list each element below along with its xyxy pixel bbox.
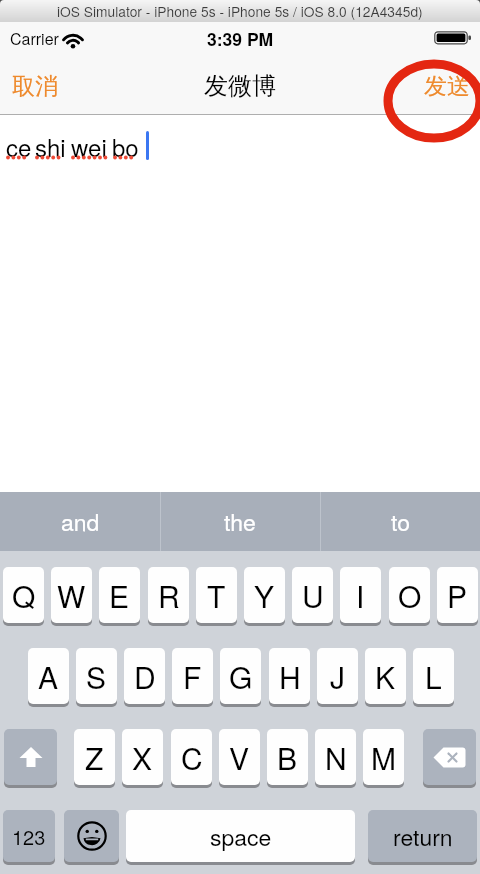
staticText: Q [12,574,36,617]
button[interactable]: 123 [3,810,55,862]
staticText: H [279,655,301,698]
button[interactable]: 取消 [4,55,66,117]
staticText: G [229,655,253,698]
staticText: Z [85,736,104,779]
button[interactable]: Y [244,567,285,623]
staticText: 123 [12,822,46,851]
button[interactable]: space [126,810,355,862]
staticText: iOS Simulator - iPhone 5s - iPhone 5s / … [57,1,423,21]
button[interactable]: E [99,567,140,623]
button[interactable]: J [317,648,358,704]
staticText: A [38,655,59,698]
button[interactable]: P [437,567,478,623]
staticText: and [61,505,100,538]
button[interactable]: T [196,567,237,623]
staticText: 发送 [424,72,470,101]
button[interactable]: X [122,729,163,785]
button[interactable]: U [292,567,333,623]
staticText: S [86,655,107,698]
staticText: X [132,736,153,779]
staticText: J [330,655,345,698]
staticText: F [183,655,202,698]
staticText: B [277,736,298,779]
button[interactable]: W [51,567,92,623]
staticText: return [393,820,453,853]
staticText: 发微博 [204,71,276,101]
staticText: 取消 [12,72,58,101]
staticText: D [134,655,156,698]
button[interactable]: K [365,648,406,704]
staticText: V [229,736,250,779]
button[interactable] [64,810,119,862]
button[interactable]: B [267,729,308,785]
staticText: L [425,655,442,698]
staticText: M [371,736,396,779]
staticText: shi [35,129,66,163]
staticText: R [158,574,180,617]
button[interactable] [423,729,476,785]
staticText: wei [71,129,107,163]
button[interactable]: S [76,648,117,704]
button[interactable]: N [315,729,356,785]
staticText: W [57,574,86,617]
staticText: U [302,574,324,617]
staticText: K [375,655,396,698]
button[interactable]: L [413,648,454,704]
staticText: 3:39 PM [207,26,274,51]
button[interactable]: return [368,810,477,862]
staticText: N [325,736,347,779]
button[interactable]: C [171,729,212,785]
staticText: ce [6,129,32,163]
button[interactable]: F [172,648,213,704]
button[interactable]: V [219,729,260,785]
button[interactable]: and [0,492,160,551]
button[interactable] [4,729,57,785]
button[interactable]: A [28,648,69,704]
button[interactable]: O [389,567,430,623]
staticText: I [356,574,365,617]
button[interactable]: D [124,648,165,704]
button[interactable]: M [363,729,404,785]
button[interactable]: Z [74,729,115,785]
staticText: E [109,574,130,617]
staticText: P [447,574,468,617]
staticText: O [398,574,422,617]
staticText: space [210,820,272,853]
button[interactable]: H [269,648,310,704]
button[interactable]: to [320,492,480,551]
button[interactable]: I [340,567,381,623]
button[interactable]: R [148,567,189,623]
button[interactable]: 发送 [414,55,480,117]
staticText: the [224,505,256,538]
staticText: bo [112,129,139,163]
button[interactable]: G [220,648,261,704]
button[interactable]: the [160,492,320,551]
staticText: Y [254,574,275,617]
staticText: to [391,505,410,538]
staticText: Carrier [10,27,59,50]
staticText: C [181,736,203,779]
button[interactable]: Q [3,567,44,623]
staticText: T [207,574,226,617]
